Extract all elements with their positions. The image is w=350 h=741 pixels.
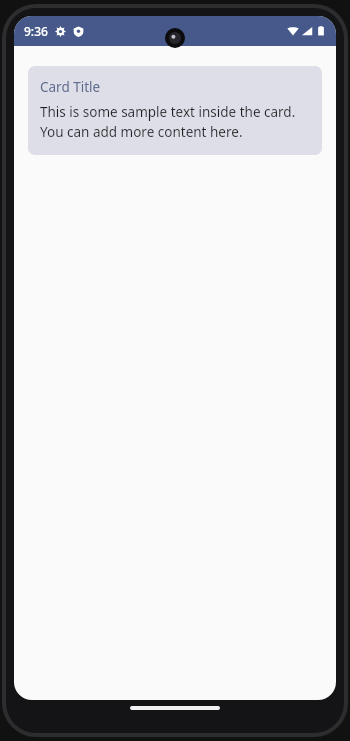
staticText: 9:36 xyxy=(24,23,48,39)
staticText: Card Title xyxy=(40,78,101,96)
button[interactable]: Card Title xyxy=(28,66,322,155)
staticText: This is some sample text inside the card… xyxy=(40,103,310,141)
other: Home gesture xyxy=(130,706,220,710)
